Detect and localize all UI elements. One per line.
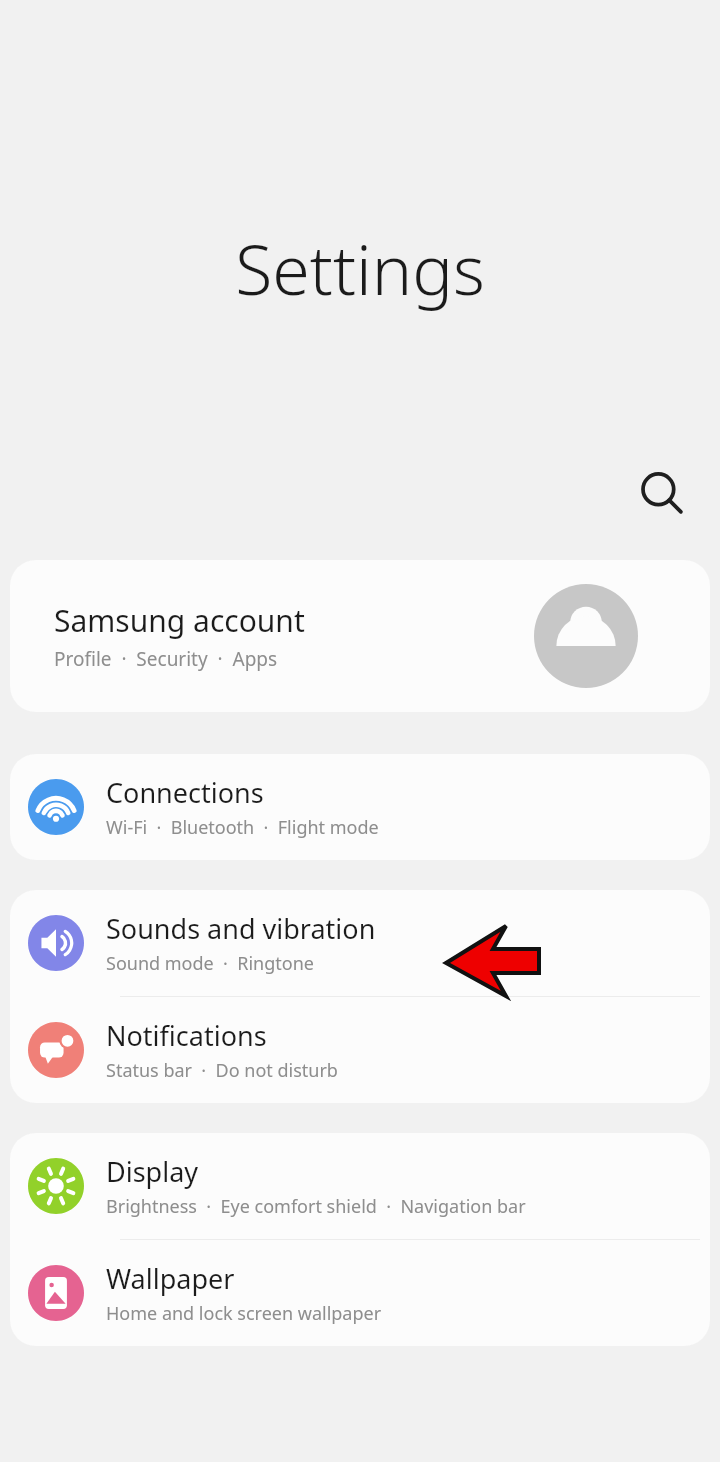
staticText: Wi-Fi · Bluetooth · Flight mode bbox=[106, 815, 379, 840]
staticText: Wallpaper bbox=[106, 1260, 235, 1297]
staticText: Samsung account bbox=[54, 600, 305, 641]
staticText: Status bar · Do not disturb bbox=[106, 1058, 338, 1083]
button[interactable]: Samsung account bbox=[10, 560, 710, 712]
button[interactable]: Search bbox=[636, 468, 688, 520]
staticText: Home and lock screen wallpaper bbox=[106, 1301, 382, 1326]
staticText: Settings bbox=[235, 222, 485, 315]
staticText: Display bbox=[106, 1153, 199, 1190]
staticText: Sounds and vibration bbox=[106, 910, 376, 947]
button[interactable]: Notifications bbox=[10, 997, 710, 1103]
staticText: Sound mode · Ringtone bbox=[106, 951, 314, 976]
button[interactable]: Connections bbox=[10, 754, 710, 860]
staticText: Profile · Security · Apps bbox=[54, 646, 278, 672]
button[interactable]: Wallpaper bbox=[10, 1240, 710, 1346]
staticText: Notifications bbox=[106, 1017, 267, 1054]
staticText: Brightness · Eye comfort shield · Naviga… bbox=[106, 1194, 526, 1219]
staticText: Connections bbox=[106, 774, 264, 811]
button[interactable]: Sounds and vibration bbox=[10, 890, 710, 996]
button[interactable]: Display bbox=[10, 1133, 710, 1239]
